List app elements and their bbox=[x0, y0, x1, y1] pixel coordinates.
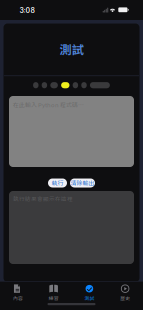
staticText: 練習 bbox=[49, 295, 59, 302]
button[interactable]: 歷史 bbox=[107, 285, 143, 301]
button[interactable]: 練習 bbox=[36, 285, 72, 301]
button[interactable]: 內容 bbox=[0, 285, 36, 301]
staticText: 清除輸出 bbox=[70, 179, 94, 187]
staticText: 測試 bbox=[59, 40, 83, 58]
button[interactable] bbox=[42, 82, 47, 88]
button[interactable] bbox=[73, 82, 78, 88]
button[interactable]: 執行 bbox=[48, 178, 67, 187]
staticText: 測試 bbox=[84, 295, 94, 302]
button[interactable] bbox=[90, 82, 110, 88]
button[interactable] bbox=[50, 82, 58, 88]
button[interactable]: 測試 bbox=[71, 285, 107, 301]
button[interactable] bbox=[33, 82, 38, 88]
button[interactable] bbox=[81, 82, 87, 88]
staticText: 內容 bbox=[13, 295, 23, 302]
button[interactable]: 清除輸出 bbox=[70, 178, 95, 187]
staticText: 歷史 bbox=[120, 295, 130, 302]
staticText: 在此輸入 Python 程式碼… bbox=[13, 100, 84, 109]
staticText: 執行結果會顯示在這裡 bbox=[13, 194, 73, 203]
staticText: 執行 bbox=[51, 179, 63, 187]
button[interactable] bbox=[61, 82, 69, 88]
staticText: 3:08 bbox=[19, 6, 34, 15]
